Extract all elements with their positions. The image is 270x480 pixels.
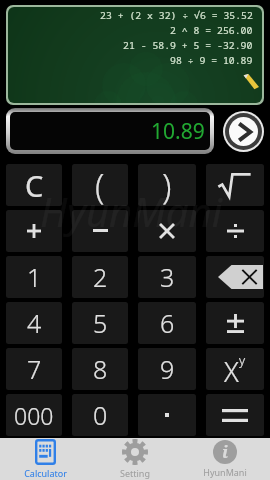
staticText: 23 + (2 x 32) ÷ √6 = 35.52 — [100, 9, 253, 22]
button[interactable]: ( — [72, 164, 128, 206]
button[interactable]: 5 — [72, 302, 128, 344]
staticText: i — [222, 440, 229, 463]
staticText: 2 ^ 8 = 256.00 — [170, 24, 253, 37]
staticText: HyunMani — [40, 184, 223, 238]
button[interactable] — [206, 394, 264, 436]
staticText: 0 — [93, 398, 108, 432]
button[interactable]: Backspace — [206, 256, 264, 298]
button[interactable]: 2 — [72, 256, 128, 298]
button[interactable] — [206, 164, 264, 206]
staticText: y — [239, 351, 246, 369]
staticText: 9 — [160, 352, 175, 386]
staticText: 8 — [93, 352, 108, 386]
staticText: 000 — [14, 400, 54, 431]
staticText: 6 — [160, 306, 175, 340]
button[interactable] — [6, 210, 62, 252]
staticText: 10.89 — [151, 117, 205, 146]
staticText: ) — [162, 164, 172, 205]
button[interactable] — [138, 210, 196, 252]
button[interactable] — [206, 302, 264, 344]
button[interactable]: 3 — [138, 256, 196, 298]
button[interactable]: i — [180, 438, 270, 480]
button[interactable]: ) — [138, 164, 196, 206]
staticText: 7 — [27, 352, 42, 386]
button[interactable]: X — [206, 348, 264, 390]
staticText: 1 — [27, 260, 42, 294]
staticText: 4 — [27, 306, 42, 340]
button[interactable]: C — [6, 164, 62, 206]
button[interactable]: 10.89 — [10, 112, 210, 150]
staticText: 5 — [93, 306, 108, 340]
button[interactable]: 8 — [72, 348, 128, 390]
staticText: X — [224, 353, 239, 390]
staticText: 2 — [93, 260, 108, 294]
staticText: HyunMani — [203, 466, 247, 478]
staticText: 98 ÷ 9 = 10.89 — [170, 54, 253, 67]
staticText: 21 - 58.9 + 5 = -32.90 — [123, 39, 253, 52]
staticText: ( — [95, 164, 105, 205]
button[interactable] — [206, 210, 264, 252]
button[interactable]: 7 — [6, 348, 62, 390]
button[interactable] — [72, 210, 128, 252]
staticText: C — [25, 166, 44, 205]
button[interactable]: 1 — [6, 256, 62, 298]
staticText: 3 — [160, 260, 175, 294]
other: Backspace — [218, 265, 263, 289]
button[interactable]: Calculator — [0, 438, 90, 480]
button[interactable]: Next — [229, 117, 258, 146]
button[interactable]: 6 — [138, 302, 196, 344]
button[interactable]: 4 — [6, 302, 62, 344]
button[interactable] — [138, 394, 196, 436]
staticText: Calculator — [24, 467, 67, 479]
staticText: Setting — [120, 467, 150, 479]
button[interactable]: 9 — [138, 348, 196, 390]
button[interactable]: 0 — [72, 394, 128, 436]
button[interactable]: Setting — [90, 438, 180, 480]
button[interactable]: 000 — [6, 394, 62, 436]
